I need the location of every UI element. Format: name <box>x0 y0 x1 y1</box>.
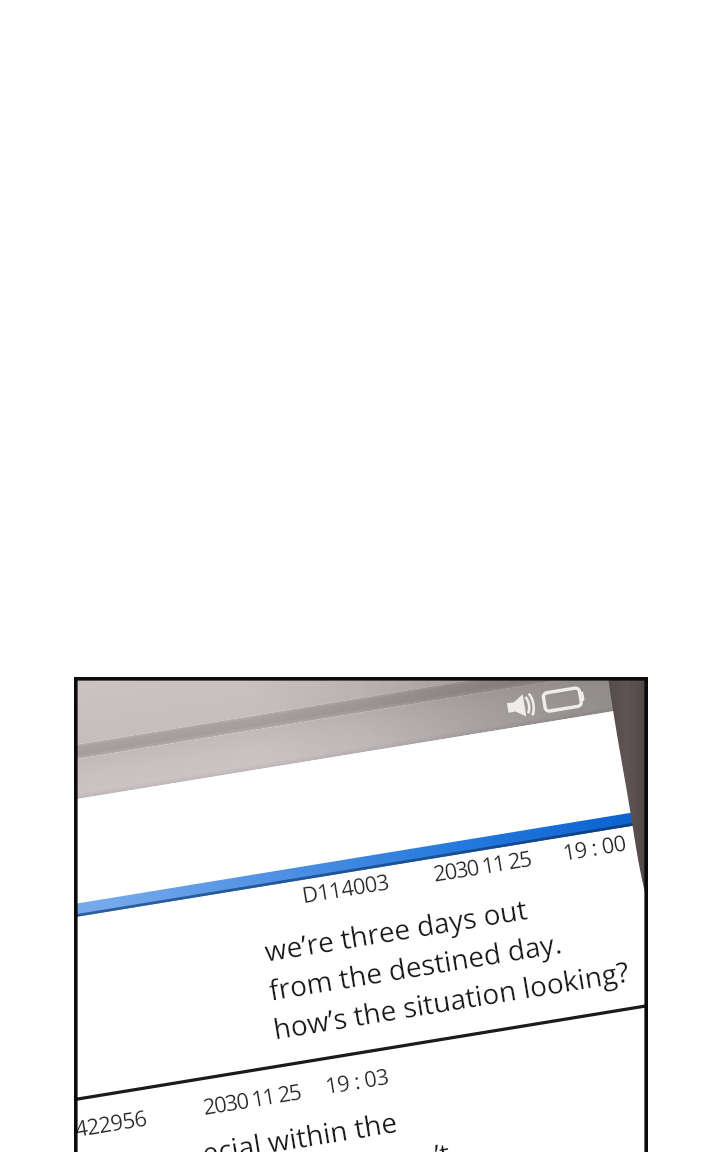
button[interactable]: Comic panel: tilted phone showing a mess… <box>0 0 720 1152</box>
